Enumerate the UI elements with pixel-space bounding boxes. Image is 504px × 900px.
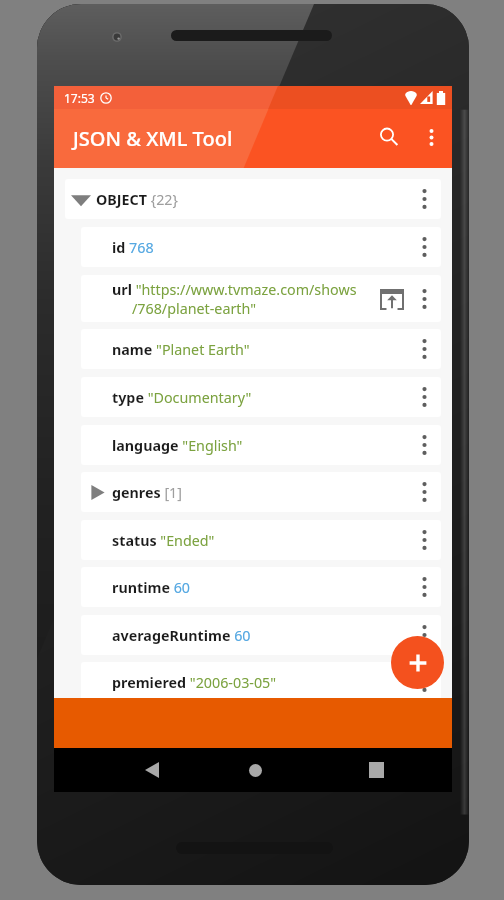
staticText: 17:53 xyxy=(64,90,95,106)
button[interactable]: Row options xyxy=(407,282,441,316)
staticText: runtime 60 xyxy=(112,578,191,597)
button[interactable]: type "Documentary" xyxy=(81,377,441,417)
staticText: averageRuntime 60 xyxy=(112,626,251,645)
button[interactable]: url "https://www.tvmaze.com/shows xyxy=(81,275,441,322)
button[interactable]: Row options xyxy=(407,665,441,699)
staticText: premiered "2006-03-05" xyxy=(112,673,277,692)
staticText: OBJECT {22} xyxy=(96,190,178,209)
button[interactable]: Row options xyxy=(407,230,441,264)
button[interactable]: Home xyxy=(191,748,315,792)
button[interactable]: genres [1] xyxy=(81,472,441,512)
button[interactable]: Open in browser xyxy=(373,282,407,316)
button[interactable]: Recents xyxy=(315,748,452,792)
button[interactable]: Row options xyxy=(407,332,441,366)
staticText: genres [1] xyxy=(112,483,182,502)
button[interactable]: status "Ended" xyxy=(81,520,441,560)
button[interactable]: Row options xyxy=(407,380,441,414)
button[interactable]: Row options xyxy=(407,428,441,462)
staticText: JSON & XML Tool xyxy=(73,125,233,152)
staticText: /768/planet-earth" xyxy=(132,299,257,318)
staticText: type "Documentary" xyxy=(112,388,252,407)
button[interactable]: name "Planet Earth" xyxy=(81,329,441,369)
button[interactable]: id 768 xyxy=(81,227,441,267)
button[interactable]: More options xyxy=(411,119,451,159)
button[interactable]: averageRuntime 60 xyxy=(81,615,441,655)
staticText: url "https://www.tvmaze.com/shows xyxy=(112,280,357,299)
staticText: name "Planet Earth" xyxy=(112,340,250,359)
button[interactable]: Back xyxy=(54,748,191,792)
button[interactable]: runtime 60 xyxy=(81,567,441,607)
button[interactable]: Search xyxy=(367,117,411,161)
button[interactable]: Row options xyxy=(407,182,441,216)
button[interactable]: Row options xyxy=(407,475,441,509)
button[interactable]: Row options xyxy=(407,570,441,604)
button[interactable]: premiered "2006-03-05" xyxy=(81,662,441,702)
staticText: language "English" xyxy=(112,436,243,455)
staticText: id 768 xyxy=(112,238,154,257)
button[interactable]: Row options xyxy=(407,618,441,652)
button[interactable]: Row options xyxy=(407,523,441,557)
button[interactable]: Add xyxy=(391,636,444,689)
button[interactable]: language "English" xyxy=(81,425,441,465)
button[interactable]: OBJECT {22} xyxy=(65,179,441,219)
staticText: status "Ended" xyxy=(112,531,215,550)
